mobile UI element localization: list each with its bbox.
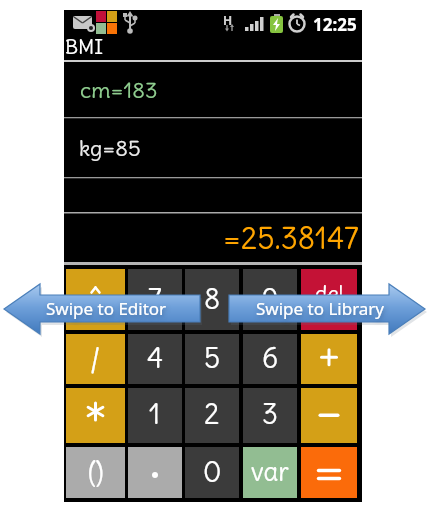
button[interactable]: 7 [128,269,182,330]
button[interactable]: 5 [185,334,239,384]
staticText: 9 [262,281,279,316]
button[interactable]: () [66,447,125,498]
staticText: 8 [204,281,221,316]
staticText: Swipe to Library [256,297,385,320]
button[interactable] [66,388,125,443]
button[interactable]: 2 [185,388,239,443]
button[interactable]: 0 [185,447,239,498]
staticText: 3 [262,396,278,431]
button[interactable]: 1 [128,388,182,443]
staticText: 6 [262,340,279,375]
staticText: =25.38147 [223,219,359,257]
staticText: var [251,455,289,488]
staticText: cm=183 [80,76,158,104]
button[interactable] [301,447,357,498]
button[interactable] [64,118,362,177]
button[interactable] [301,334,357,384]
staticText: kg=85 [79,134,141,162]
staticText: 7 [148,281,162,316]
button[interactable] [301,388,357,443]
staticText: / [90,341,101,376]
staticText: H [223,12,233,28]
staticText: 1 [149,396,161,431]
staticText: 4 [147,340,164,375]
staticText: 2 [204,396,220,431]
staticText: 12:25 [313,13,357,36]
button[interactable]: Swipe to Editor [9,295,204,322]
staticText: 0 [203,454,222,489]
staticText: BMI [65,34,104,59]
button[interactable]: 4 [128,334,182,384]
button[interactable]: del [301,269,357,330]
button[interactable]: 3 [243,388,297,443]
staticText: 5 [204,340,221,375]
button[interactable] [64,62,362,117]
button[interactable]: var [243,447,297,498]
button[interactable]: 8 [185,269,239,330]
button[interactable]: / [66,334,125,384]
staticText: () [88,455,104,488]
staticText: Swipe to Editor [46,297,167,320]
button[interactable] [128,447,182,498]
button[interactable]: 9 [243,269,297,330]
button[interactable]: Swipe to Library [229,295,411,322]
button[interactable] [66,269,125,330]
button[interactable]: 6 [243,334,297,384]
staticText: del [315,280,344,306]
